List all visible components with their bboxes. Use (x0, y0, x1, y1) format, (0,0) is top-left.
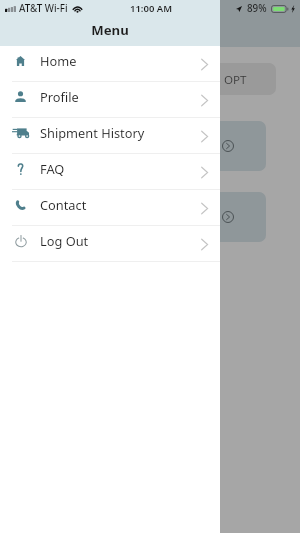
button[interactable]: Shipment History (0, 118, 220, 153)
button[interactable]: FAQ (0, 154, 220, 189)
staticText: FAQ (40, 160, 65, 177)
button[interactable]: Open shipment (150, 192, 266, 242)
staticText: AT&T Wi-Fi (19, 2, 68, 15)
staticText: 11:00 AM (130, 2, 173, 15)
staticText: Shipment History (40, 124, 145, 141)
button[interactable]: Log Out (0, 226, 220, 261)
staticText: Contact (40, 196, 87, 213)
button[interactable]: Home (0, 46, 220, 81)
staticText: Profile (40, 88, 79, 105)
staticText: OPT (224, 72, 247, 88)
button[interactable]: Contact (0, 190, 220, 225)
button[interactable]: Open shipment (150, 121, 266, 171)
staticText: Log Out (40, 232, 89, 249)
staticText: 89% (247, 2, 267, 15)
button[interactable]: OPT (184, 63, 276, 95)
staticText: Home (40, 52, 77, 69)
staticText: Menu (0, 21, 220, 39)
button[interactable]: Profile (0, 82, 220, 117)
